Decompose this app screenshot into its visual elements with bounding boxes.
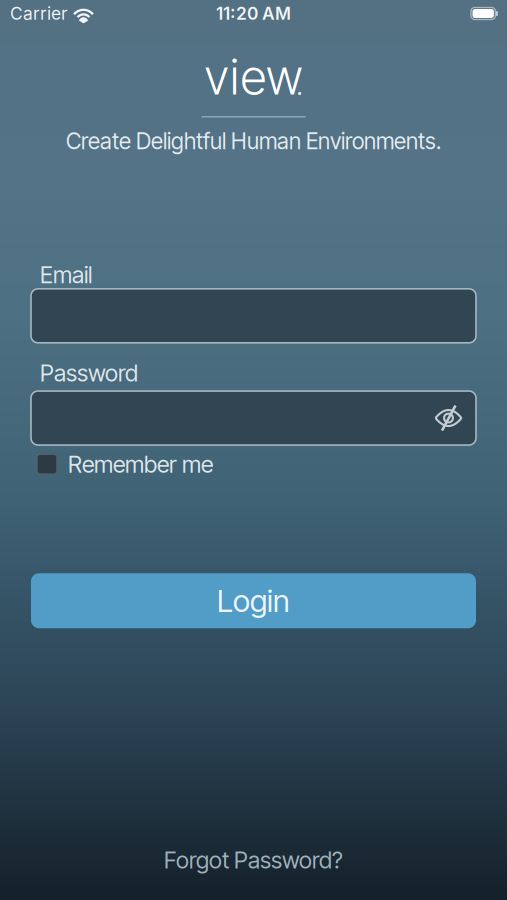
button[interactable]: Show password bbox=[435, 405, 462, 431]
staticText: Login bbox=[217, 582, 290, 619]
button[interactable]: Remember me bbox=[0, 450, 507, 478]
staticText: Forgot Password? bbox=[164, 846, 343, 874]
staticText: Carrier bbox=[10, 3, 68, 24]
staticText: view bbox=[204, 48, 303, 106]
button[interactable]: Forgot Password? bbox=[164, 846, 343, 874]
button[interactable]: Email bbox=[31, 289, 476, 343]
staticText: Password bbox=[40, 359, 138, 387]
staticText: Email bbox=[40, 261, 92, 289]
staticText: Remember me bbox=[68, 450, 213, 478]
button[interactable]: Login bbox=[31, 573, 476, 628]
staticText: Create Delightful Human Environments. bbox=[66, 127, 441, 155]
staticText: 11:20 AM bbox=[216, 3, 291, 24]
button[interactable]: Password bbox=[31, 391, 476, 445]
